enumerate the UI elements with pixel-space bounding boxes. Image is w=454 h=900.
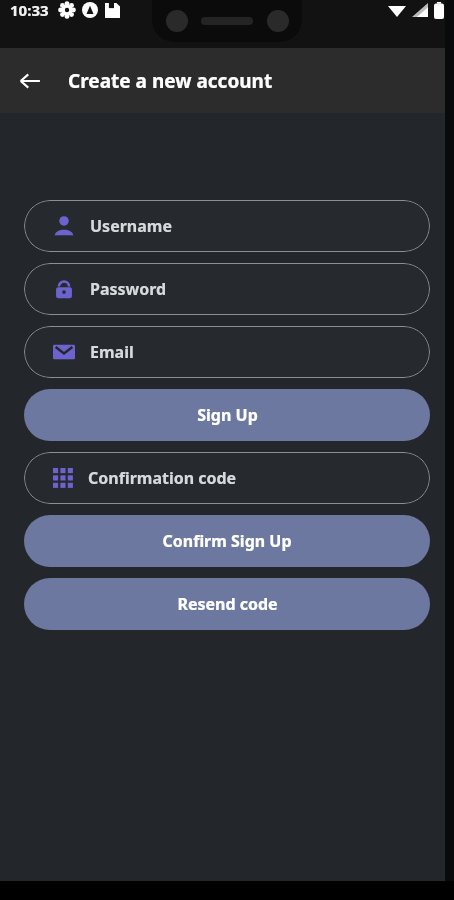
staticText: Sign Up — [197, 404, 258, 426]
button[interactable]: Password — [24, 263, 430, 315]
button[interactable]: Confirmation code — [24, 452, 430, 504]
staticText: Confirm Sign Up — [162, 530, 292, 552]
button[interactable]: Username — [24, 200, 430, 252]
staticText: Password — [90, 278, 167, 300]
staticText: Confirmation code — [88, 467, 237, 489]
staticText: Email — [90, 341, 134, 363]
staticText: Create a new account — [68, 68, 273, 94]
button[interactable]: Email — [24, 326, 430, 378]
button[interactable]: Confirm Sign Up — [24, 515, 430, 567]
staticText: 10:33 — [10, 0, 49, 20]
staticText: Username — [90, 215, 172, 237]
button[interactable]: Back — [8, 59, 52, 103]
button[interactable]: Sign Up — [24, 389, 430, 441]
staticText: Resend code — [177, 593, 278, 615]
button[interactable]: Resend code — [24, 578, 430, 630]
